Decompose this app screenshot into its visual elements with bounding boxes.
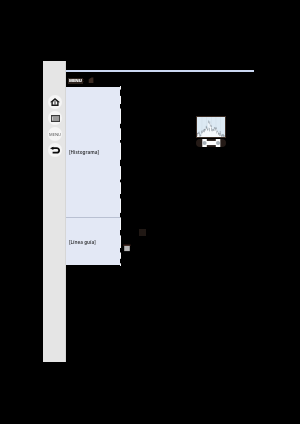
button[interactable]: Back [48,143,62,157]
button[interactable]: Menu [48,127,62,141]
staticText: [Línea guía] [69,239,96,245]
button[interactable]: MENU [68,78,83,84]
button[interactable]: Display [48,111,62,125]
staticText: : [83,77,85,84]
staticText: [Histograma] [69,149,99,155]
staticText: MENU [69,78,82,84]
button[interactable]: Home [48,95,62,109]
staticText: MENU [49,132,61,137]
